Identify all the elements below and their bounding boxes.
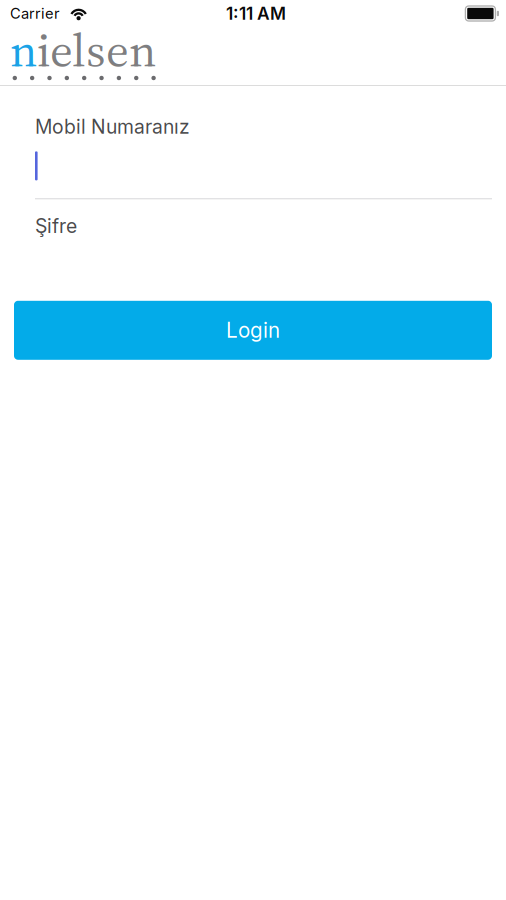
staticText: Carrier [10, 5, 60, 22]
staticText: Şifre [35, 214, 77, 238]
staticText: Login [226, 318, 280, 343]
staticText: ielsen [37, 18, 156, 82]
staticText: Mobil Numaranız [35, 115, 190, 138]
button[interactable]: Login [14, 301, 492, 360]
staticText: n [10, 18, 37, 82]
staticText: 1:11 AM [226, 3, 286, 24]
